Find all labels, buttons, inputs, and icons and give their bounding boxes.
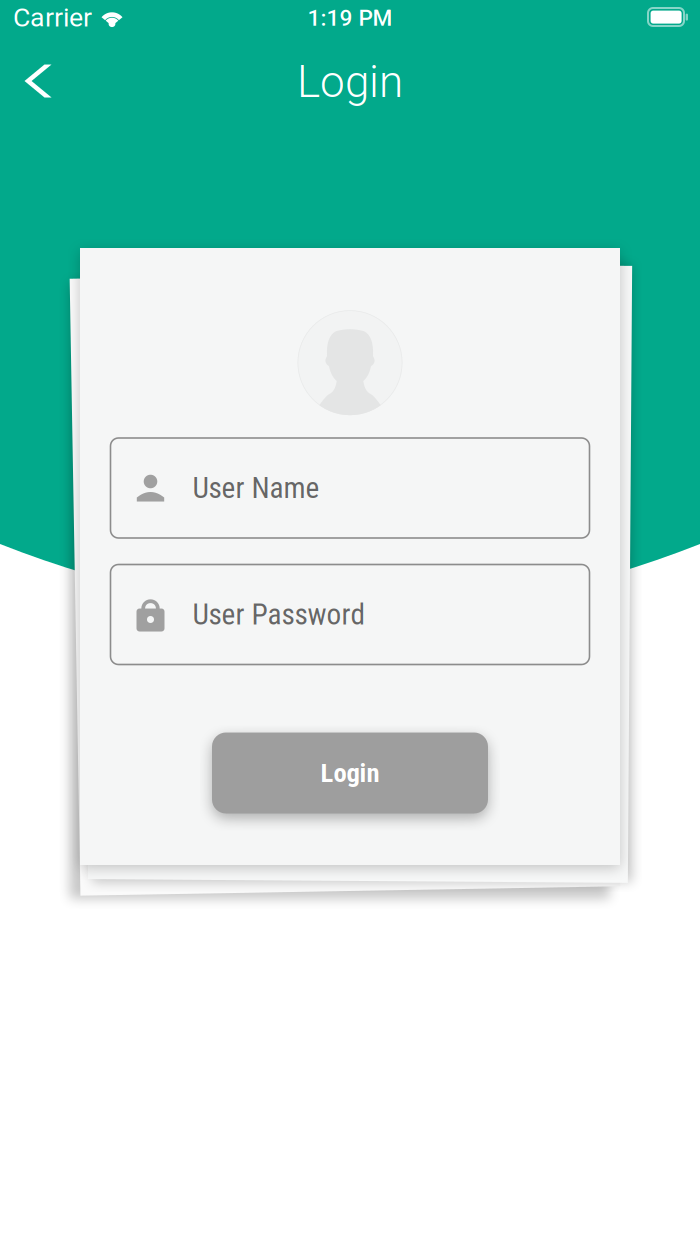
staticText: User Name [192,471,319,505]
staticText: Login [320,757,379,789]
staticText: Login [297,56,403,108]
button[interactable]: User Password [110,564,589,664]
button[interactable]: User Name [110,438,589,538]
staticText: Carrier [13,2,92,33]
button[interactable]: Login [212,732,488,813]
staticText: 1:19 PM [307,5,392,31]
button[interactable]: Back [12,48,67,113]
staticText: User Password [192,597,365,632]
